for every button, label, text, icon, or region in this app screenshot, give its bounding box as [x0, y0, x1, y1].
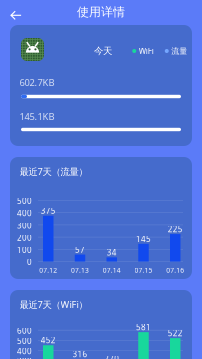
staticText: 581 [136, 322, 151, 332]
staticText: 270 [104, 353, 119, 359]
staticText: 流量 [171, 46, 187, 56]
staticText: 07.15 [134, 266, 152, 275]
staticText: 07.12 [39, 266, 57, 275]
staticText: 522 [168, 328, 183, 338]
staticText: 225 [168, 224, 183, 234]
staticText: 100 [17, 244, 32, 255]
staticText: 最近7天（WiFi） [19, 298, 87, 311]
staticText: 07.14 [103, 266, 121, 275]
staticText: 57 [75, 244, 85, 255]
staticText: 400 [17, 346, 32, 356]
staticText: 300 [17, 356, 32, 359]
staticText: 316 [72, 349, 87, 359]
staticText: 145 [136, 233, 151, 244]
staticText: WiFi [139, 46, 154, 56]
staticText: 602.7KB [19, 76, 54, 89]
staticText: 500 [17, 196, 32, 206]
staticText: 07.16 [166, 266, 184, 275]
staticText: 07.13 [71, 266, 89, 275]
staticText: 375 [41, 205, 56, 216]
staticText: 0 [27, 257, 32, 267]
staticText: 145.1KB [19, 110, 54, 123]
staticText: 600 [17, 325, 32, 336]
staticText: 今天 [94, 45, 112, 57]
staticText: 200 [17, 232, 32, 243]
staticText: 34 [107, 247, 117, 258]
button[interactable]: Back [2, 3, 28, 27]
staticText: 400 [17, 208, 32, 218]
staticText: 使用详情 [77, 5, 125, 19]
staticText: 452 [41, 335, 56, 345]
staticText: 300 [17, 220, 32, 231]
staticText: 最近7天（流量） [19, 165, 87, 178]
staticText: 500 [17, 336, 32, 346]
